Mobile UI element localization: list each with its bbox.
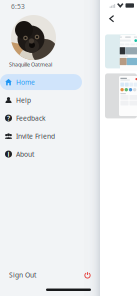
staticText: Shaquille Oatmeal: [9, 61, 52, 68]
button[interactable]: Sign Out: [0, 266, 100, 284]
staticText: Help: [16, 96, 31, 105]
staticText: Invite Friend: [16, 132, 55, 141]
staticText: ?: [7, 114, 10, 123]
button[interactable]: Home: [0, 74, 82, 90]
button[interactable]: Invite Friend: [0, 128, 82, 144]
staticText: 6:53: [11, 2, 25, 11]
staticText: Sign Out: [9, 271, 36, 279]
staticText: Feedback: [16, 114, 46, 123]
button[interactable]: Back: [100, 11, 114, 26]
staticText: Home: [16, 78, 35, 87]
button[interactable]: i: [0, 146, 82, 162]
button[interactable]: ?: [0, 110, 82, 126]
button[interactable]: Help: [0, 92, 82, 108]
staticText: i: [7, 150, 9, 159]
staticText: About: [16, 150, 34, 159]
